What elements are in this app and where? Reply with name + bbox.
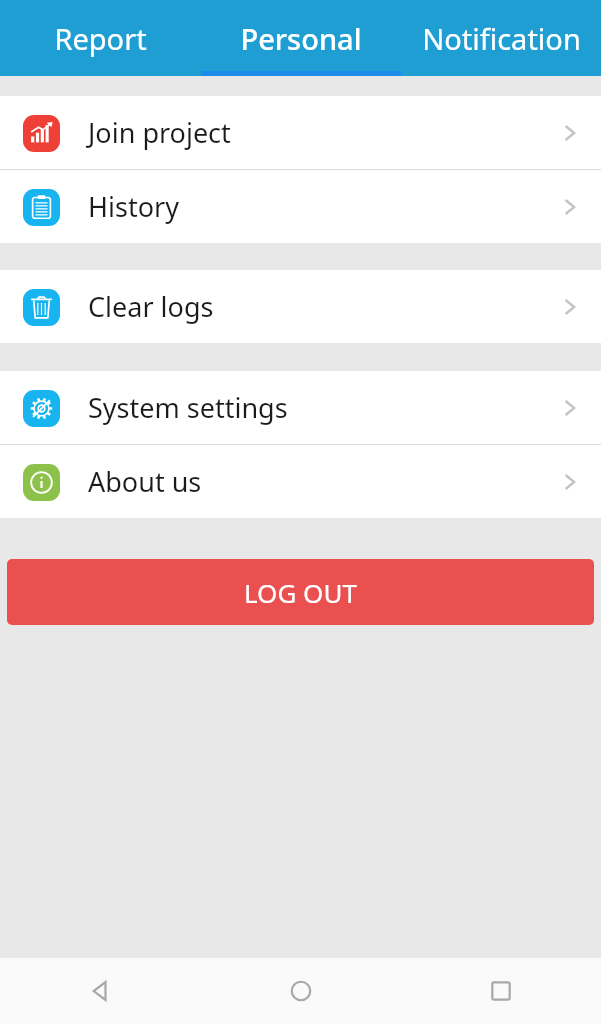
button[interactable]: Notification — [401, 0, 601, 76]
button[interactable]: Personal — [201, 0, 401, 76]
staticText: System settings — [88, 389, 557, 426]
staticText: LOG OUT — [244, 575, 357, 610]
staticText: Notification — [422, 19, 581, 58]
staticText: Join project — [88, 114, 557, 151]
button[interactable]: Report — [0, 0, 201, 76]
button[interactable]: Clear logs — [0, 270, 601, 343]
button[interactable]: Home — [201, 958, 401, 1024]
button[interactable]: LOG OUT — [7, 559, 594, 625]
button[interactable]: Recents — [401, 958, 601, 1024]
staticText: Report — [54, 19, 147, 58]
staticText: History — [88, 188, 557, 225]
button[interactable]: Join project — [0, 96, 601, 169]
button[interactable]: History — [0, 170, 601, 243]
button[interactable]: System settings — [0, 371, 601, 444]
staticText: Clear logs — [88, 288, 557, 325]
button[interactable]: Back — [0, 958, 201, 1024]
button[interactable]: About us — [0, 445, 601, 518]
staticText: About us — [88, 463, 557, 500]
staticText: Personal — [240, 19, 362, 58]
